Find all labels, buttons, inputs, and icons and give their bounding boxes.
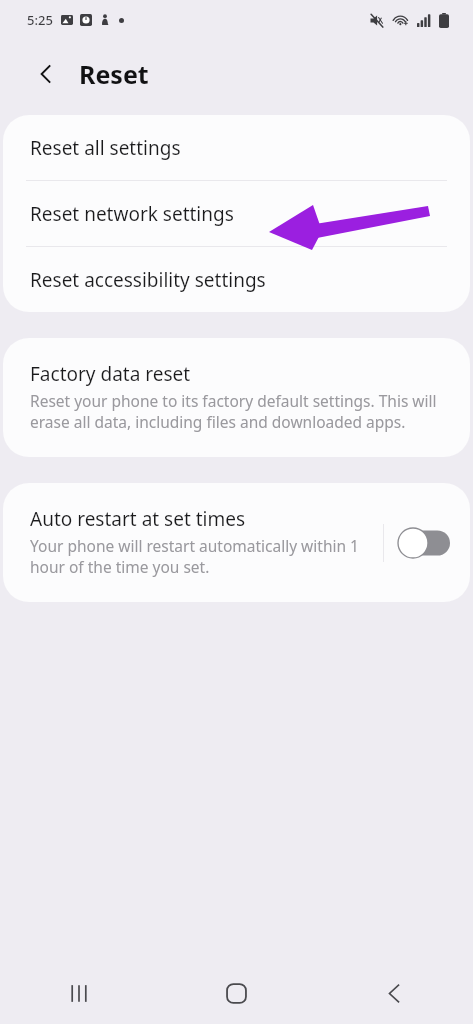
button[interactable]: Back — [24, 52, 68, 96]
staticText: Reset your phone to its factory default … — [30, 390, 440, 433]
staticText: Reset accessibility settings — [30, 267, 266, 293]
button[interactable]: Back — [315, 962, 473, 1024]
staticText: 5:25 — [27, 11, 53, 29]
staticText: Reset — [79, 57, 149, 91]
button[interactable]: Auto restart at set times — [3, 483, 383, 602]
button[interactable]: Recents — [0, 962, 157, 1024]
staticText: Your phone will restart automatically wi… — [30, 535, 373, 578]
staticText: Auto restart at set times — [30, 506, 246, 532]
staticText: Reset network settings — [30, 201, 234, 227]
button[interactable]: Reset network settings — [3, 181, 470, 246]
button[interactable]: Reset all settings — [3, 115, 470, 180]
button[interactable]: Reset accessibility settings — [3, 247, 470, 312]
button[interactable]: Factory data reset — [3, 338, 470, 457]
button[interactable]: Auto restart toggle — [398, 528, 450, 558]
button[interactable]: Home — [157, 962, 315, 1024]
staticText: Reset all settings — [30, 135, 181, 161]
staticText: Factory data reset — [30, 361, 191, 387]
